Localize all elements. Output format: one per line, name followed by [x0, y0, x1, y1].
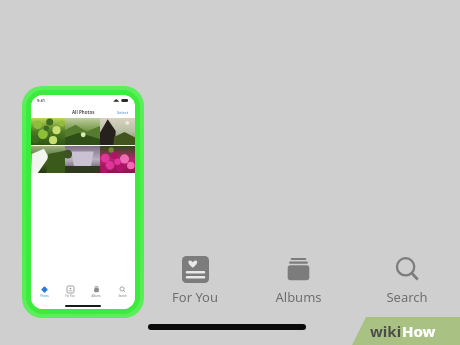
staticText: Search — [118, 294, 127, 298]
staticText: Search — [386, 288, 428, 306]
staticText: For You — [172, 288, 218, 306]
button[interactable]: Search — [362, 256, 452, 306]
button[interactable] — [100, 118, 135, 145]
staticText: 9:41 — [37, 98, 45, 103]
staticText: For You — [65, 294, 75, 298]
button[interactable]: Select — [117, 110, 129, 115]
staticText: wiki — [370, 321, 402, 341]
button[interactable] — [31, 146, 65, 173]
button[interactable] — [65, 146, 100, 173]
button[interactable]: Albums — [83, 282, 109, 302]
button[interactable]: For You — [57, 282, 83, 302]
button[interactable]: Search — [109, 282, 135, 302]
staticText: Photos — [40, 294, 49, 298]
staticText: How — [402, 321, 436, 341]
button[interactable] — [31, 118, 65, 145]
button[interactable]: Photos — [31, 282, 57, 302]
staticText: Albums — [91, 294, 101, 298]
button[interactable] — [100, 146, 135, 173]
staticText: All Photos — [72, 109, 95, 115]
button[interactable] — [65, 118, 100, 145]
button[interactable]: Albums — [253, 256, 343, 306]
staticText: Select — [117, 110, 129, 115]
button[interactable]: For You — [150, 256, 240, 306]
staticText: Albums — [275, 288, 322, 306]
